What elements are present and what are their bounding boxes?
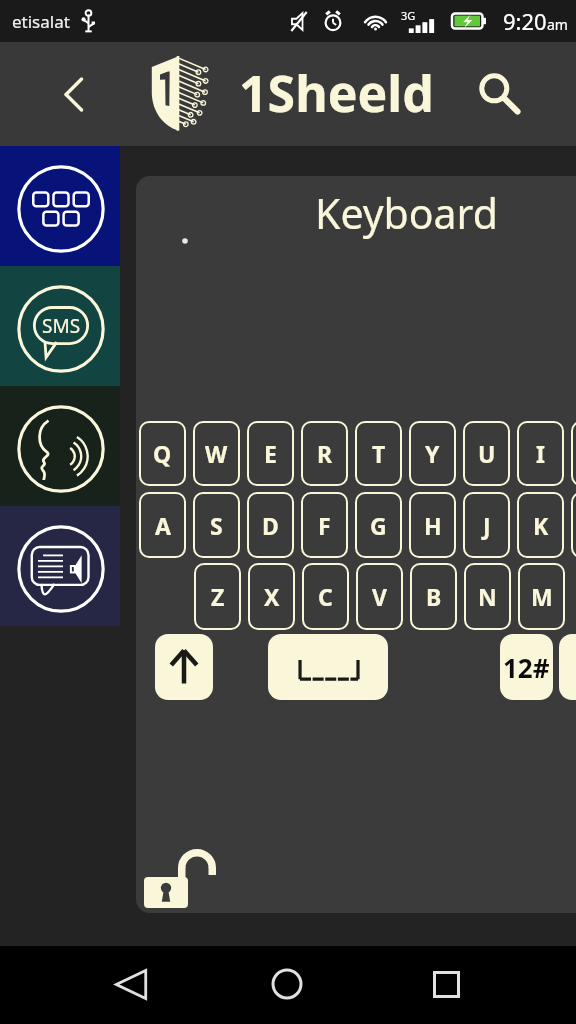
- staticText: F: [318, 510, 331, 541]
- staticText: N: [478, 581, 497, 612]
- staticText: W: [205, 438, 228, 469]
- button[interactable]: E: [247, 421, 294, 486]
- button[interactable]: M: [518, 563, 565, 630]
- button[interactable]: X: [248, 563, 295, 630]
- button[interactable]: B: [410, 563, 457, 630]
- staticText: I: [536, 438, 545, 469]
- button[interactable]: R: [301, 421, 348, 486]
- button[interactable]: Apps shield: [0, 146, 120, 266]
- button[interactable]: O: [571, 421, 576, 486]
- staticText: J: [483, 510, 491, 541]
- button[interactable]: L: [571, 492, 576, 558]
- staticText: am: [547, 15, 568, 34]
- button[interactable]: 12#: [500, 634, 553, 700]
- button[interactable]: Recents: [414, 952, 478, 1016]
- staticText: Y: [425, 438, 440, 469]
- staticText: Keyboard: [315, 185, 498, 241]
- button[interactable]: Home: [255, 952, 319, 1016]
- staticText: Q: [153, 438, 172, 469]
- button[interactable]: Back: [50, 70, 98, 118]
- button[interactable]: H: [409, 492, 456, 558]
- button[interactable]: Search: [474, 68, 526, 120]
- button[interactable]: Key: [559, 634, 576, 700]
- button[interactable]: Text to speech shield: [0, 506, 120, 626]
- staticText: 1Sheeld: [239, 59, 434, 127]
- staticText: 12#: [503, 650, 550, 685]
- staticText: D: [262, 510, 279, 541]
- button[interactable]: Back: [99, 952, 163, 1016]
- staticText: etisalat: [12, 10, 70, 33]
- staticText: G: [370, 510, 387, 541]
- staticText: X: [264, 581, 280, 612]
- button[interactable]: A: [139, 492, 186, 558]
- button[interactable]: I: [517, 421, 564, 486]
- button[interactable]: Key: [268, 634, 388, 700]
- staticText: V: [372, 581, 387, 612]
- staticText: U: [478, 438, 496, 469]
- staticText: T: [372, 438, 386, 469]
- staticText: R: [317, 438, 333, 469]
- button[interactable]: F: [301, 492, 348, 558]
- button[interactable]: Voice recognition shield: [0, 386, 120, 506]
- staticText: Z: [211, 581, 225, 612]
- button[interactable]: Z: [194, 563, 241, 630]
- button[interactable]: T: [355, 421, 402, 486]
- staticText: K: [533, 510, 549, 541]
- button[interactable]: Key: [155, 634, 213, 700]
- staticText: M: [531, 581, 553, 612]
- button[interactable]: SMS shield: [0, 266, 120, 386]
- button[interactable]: Y: [409, 421, 456, 486]
- button[interactable]: Unlock: [140, 841, 222, 913]
- button[interactable]: G: [355, 492, 402, 558]
- staticText: C: [318, 581, 333, 612]
- button[interactable]: J: [463, 492, 510, 558]
- staticText: A: [155, 510, 171, 541]
- button[interactable]: N: [464, 563, 511, 630]
- button[interactable]: Q: [139, 421, 186, 486]
- staticText: 3G: [401, 8, 416, 23]
- button[interactable]: D: [247, 492, 294, 558]
- staticText: H: [424, 510, 442, 541]
- staticText: SMS: [42, 313, 81, 339]
- staticText: B: [426, 581, 442, 612]
- button[interactable]: S: [193, 492, 240, 558]
- button[interactable]: K: [517, 492, 564, 558]
- button[interactable]: C: [302, 563, 349, 630]
- button[interactable]: V: [356, 563, 403, 630]
- button[interactable]: U: [463, 421, 510, 486]
- staticText: E: [264, 438, 277, 469]
- staticText: 9:20: [503, 6, 547, 36]
- staticText: S: [210, 510, 223, 541]
- button[interactable]: W: [193, 421, 240, 486]
